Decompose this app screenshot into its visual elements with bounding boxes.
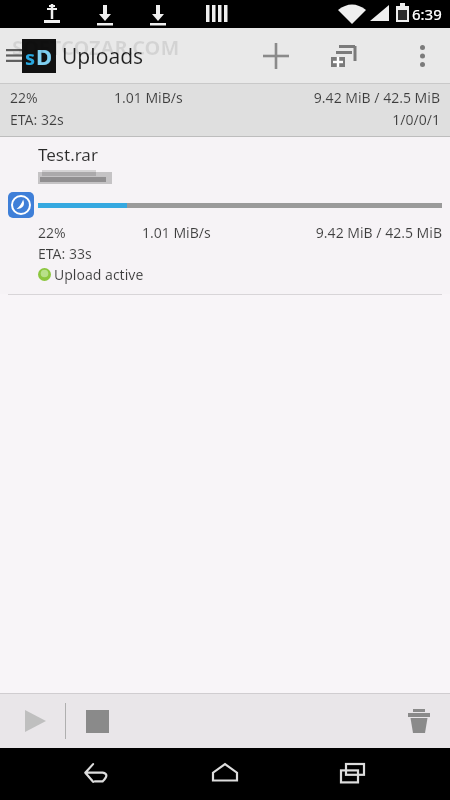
- button[interactable]: Stop: [72, 696, 122, 746]
- button[interactable]: Back: [75, 752, 119, 796]
- button[interactable]: Add batch: [320, 32, 368, 80]
- button[interactable]: Start: [10, 696, 60, 746]
- staticText: Test.rar: [38, 143, 98, 166]
- staticText: D: [36, 41, 53, 71]
- button[interactable]: Recent apps: [331, 752, 375, 796]
- staticText: 22%: [10, 88, 38, 107]
- button[interactable]: More options: [402, 36, 442, 76]
- staticText: 1/0/0/1: [64, 110, 440, 129]
- staticText: SOFTCOZAR.COM: [12, 34, 180, 61]
- staticText: 6:39: [412, 4, 442, 24]
- staticText: 22%: [38, 223, 66, 242]
- staticText: 9.42 MiB / 42.5 MiB: [211, 223, 442, 242]
- button[interactable]: Test.rar: [0, 137, 450, 294]
- staticText: 1.01 MiB/s: [142, 223, 211, 242]
- button[interactable]: Home: [203, 752, 247, 796]
- button[interactable]: Navigation drawer: [0, 36, 30, 76]
- staticText: ETA: 32s: [10, 110, 64, 129]
- staticText: Upload active: [54, 265, 144, 284]
- button[interactable]: Delete: [394, 696, 444, 746]
- staticText: Uploads: [62, 42, 144, 71]
- staticText: s: [25, 44, 36, 71]
- staticText: 9.42 MiB / 42.5 MiB: [183, 88, 440, 107]
- staticText: 1.01 MiB/s: [114, 88, 183, 107]
- button[interactable]: Add: [252, 32, 300, 80]
- staticText: ETA: 33s: [38, 244, 92, 263]
